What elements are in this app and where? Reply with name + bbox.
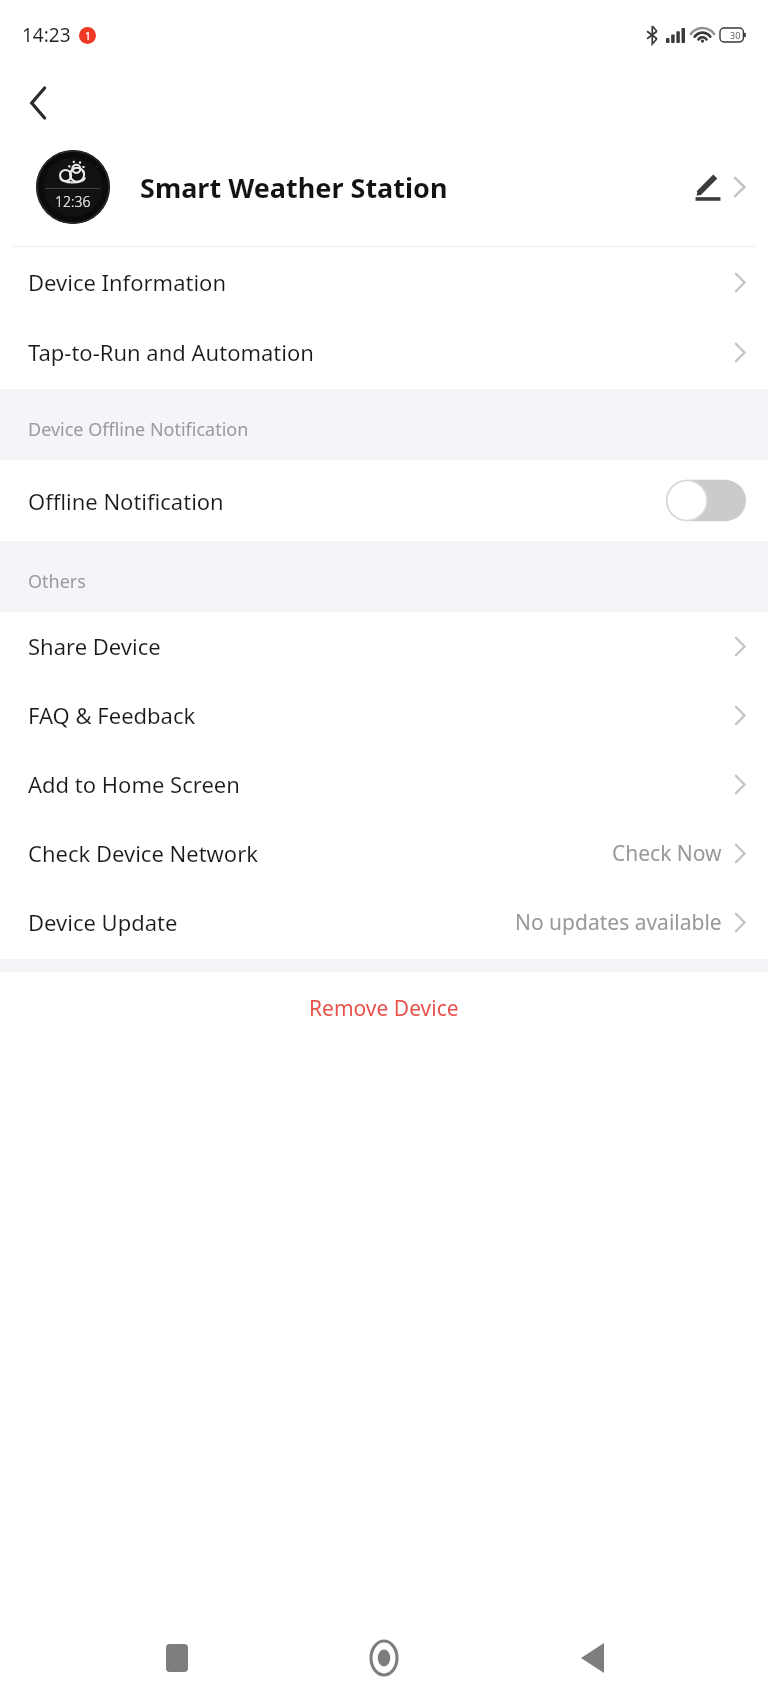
staticText: 1	[85, 29, 91, 43]
button[interactable]: Offline Notification	[0, 460, 768, 541]
staticText: Smart Weather Station	[140, 169, 448, 206]
button[interactable]: Check Device Network	[0, 819, 768, 888]
button[interactable]: Device Information	[0, 247, 768, 317]
staticText: Tap-to-Run and Automation	[28, 337, 314, 367]
staticText: Check Now	[612, 839, 722, 868]
staticText: 14:23	[22, 22, 71, 48]
staticText: Device Update	[28, 907, 178, 937]
button[interactable]: Share Device	[0, 612, 768, 681]
staticText: Add to Home Screen	[28, 769, 240, 799]
other: Offline Notification toggle	[666, 478, 746, 523]
button[interactable]: Back	[561, 1627, 623, 1689]
button[interactable]: Recent apps	[146, 1627, 208, 1689]
button[interactable]: Back	[14, 79, 62, 127]
button[interactable]: Device Update	[0, 888, 768, 959]
staticText: No updates available	[515, 908, 722, 937]
staticText: Share Device	[28, 631, 161, 661]
staticText: 12:36	[55, 192, 91, 211]
button[interactable]: Tap-to-Run and Automation	[0, 317, 768, 389]
staticText: Remove Device	[309, 994, 459, 1023]
staticText: FAQ & Feedback	[28, 700, 196, 730]
staticText: Offline Notification	[28, 486, 224, 516]
button[interactable]: Remove Device	[0, 972, 768, 1045]
staticText: Check Device Network	[28, 838, 259, 868]
button[interactable]: Home	[353, 1627, 415, 1689]
button[interactable]: 12:36	[0, 136, 768, 238]
other: Rename device	[689, 168, 727, 206]
staticText: Others	[28, 569, 86, 594]
button[interactable]: Add to Home Screen	[0, 750, 768, 819]
staticText: Device Information	[28, 267, 227, 297]
button[interactable]: FAQ & Feedback	[0, 681, 768, 750]
staticText: 30	[730, 29, 741, 41]
staticText: Device Offline Notification	[28, 417, 249, 442]
